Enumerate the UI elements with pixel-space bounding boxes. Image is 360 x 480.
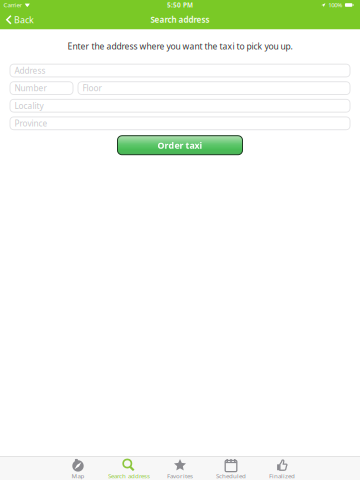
staticText: Finalized: [269, 472, 295, 480]
button[interactable]: Favorites: [154, 457, 205, 480]
staticText: Address: [14, 65, 45, 76]
staticText: Map: [71, 472, 84, 480]
staticText: Favorites: [167, 472, 193, 480]
button[interactable]: Order taxi: [117, 136, 242, 155]
staticText: Number: [14, 82, 46, 94]
staticText: Locality: [14, 100, 43, 111]
staticText: Back: [14, 14, 34, 26]
button[interactable]: Finalized: [256, 457, 307, 480]
staticText: Search address: [150, 14, 209, 25]
staticText: Enter the address where you want the tax…: [67, 40, 292, 52]
button[interactable]: Map: [52, 457, 103, 480]
staticText: Scheduled: [216, 472, 246, 480]
staticText: 100%: [328, 1, 342, 9]
staticText: Carrier: [4, 1, 22, 9]
staticText: Province: [14, 118, 47, 129]
staticText: Search address: [108, 472, 150, 480]
button[interactable]: Back: [0, 10, 41, 29]
staticText: 5:50 PM: [167, 1, 193, 9]
button[interactable]: Scheduled: [205, 457, 256, 480]
button[interactable]: Search address: [103, 457, 154, 480]
staticText: Order taxi: [157, 139, 202, 151]
staticText: Floor: [82, 82, 101, 94]
